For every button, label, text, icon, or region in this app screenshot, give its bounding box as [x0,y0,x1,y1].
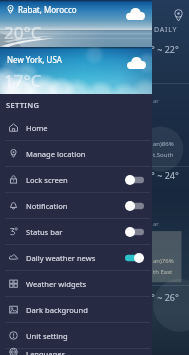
staticText: 17°C [4,69,42,92]
staticText: SETTING [6,100,40,110]
button[interactable]: Manage location [0,141,152,166]
staticText: Weather widgets [26,279,87,289]
button[interactable]: Languages [0,349,152,355]
staticText: t.South [153,151,174,159]
staticText: Lock screen [26,175,68,185]
button[interactable]: Unit setting [0,323,152,348]
staticText: Dark background [26,305,88,315]
staticText: ° ~ 22° [151,43,179,55]
staticText: Status bar [26,227,63,237]
button[interactable]: Off [125,175,144,185]
staticText: ° ~ 24° [151,169,179,181]
staticText: an)86% [153,140,174,148]
button[interactable]: Notification [0,193,152,218]
staticText: New York, USA [7,54,62,65]
button[interactable]: Weather widgets [0,271,152,296]
staticText: DAILY [154,25,178,35]
staticText: Languages [26,349,66,355]
staticText: Unit setting [26,331,68,341]
button[interactable]: Status bar [0,219,152,244]
staticText: 20°C [4,21,42,44]
button[interactable]: Lock screen [0,167,152,192]
staticText: Rabat, Morocco [18,4,77,15]
button[interactable]: Daily weather news [0,245,152,270]
staticText: ° ~ 26° [151,291,179,303]
button[interactable]: New York, USA [0,47,152,94]
staticText: Notification [26,201,68,211]
button[interactable]: Location [172,9,185,22]
button[interactable]: Dark background [0,297,152,322]
button[interactable]: On [125,253,144,263]
staticText: Daily weather news [26,253,96,263]
staticText: ar [153,97,159,105]
staticText: an)76% [153,257,174,265]
staticText: Manage location [26,149,86,159]
button[interactable]: Off [125,201,144,211]
staticText: th East [153,268,173,276]
button[interactable]: Home [0,115,152,140]
button[interactable]: Off [125,227,144,237]
button[interactable]: Rabat, Morocco [0,0,152,47]
staticText: ar [153,220,159,228]
staticText: Home [26,123,48,133]
